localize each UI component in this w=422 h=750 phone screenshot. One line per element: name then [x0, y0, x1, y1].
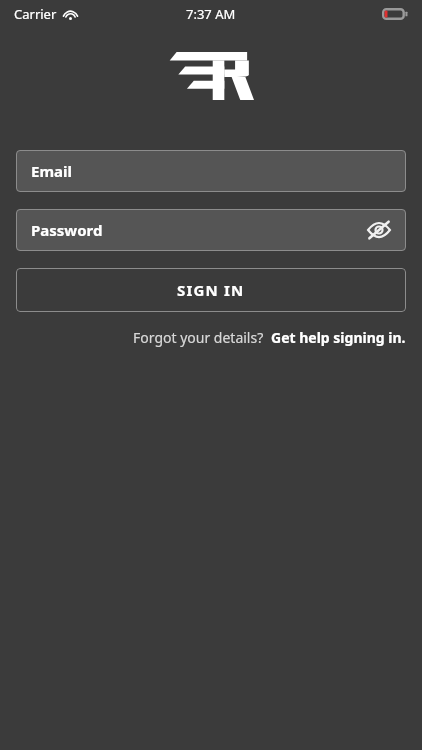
staticText: Forgot your details?: [133, 328, 264, 347]
button[interactable]: Email: [16, 150, 406, 192]
staticText: Carrier: [14, 5, 57, 23]
staticText: SIGN IN: [177, 280, 245, 300]
staticText: Email: [31, 161, 72, 181]
staticText: Get help signing in.: [271, 328, 406, 347]
staticText: 7:37 AM: [186, 5, 236, 23]
button[interactable]: Password: [16, 209, 406, 251]
staticText: Password: [31, 220, 103, 240]
button[interactable]: SIGN IN: [16, 268, 406, 312]
button[interactable]: Show password: [362, 213, 396, 247]
button[interactable]: Get help signing in.: [271, 328, 406, 347]
